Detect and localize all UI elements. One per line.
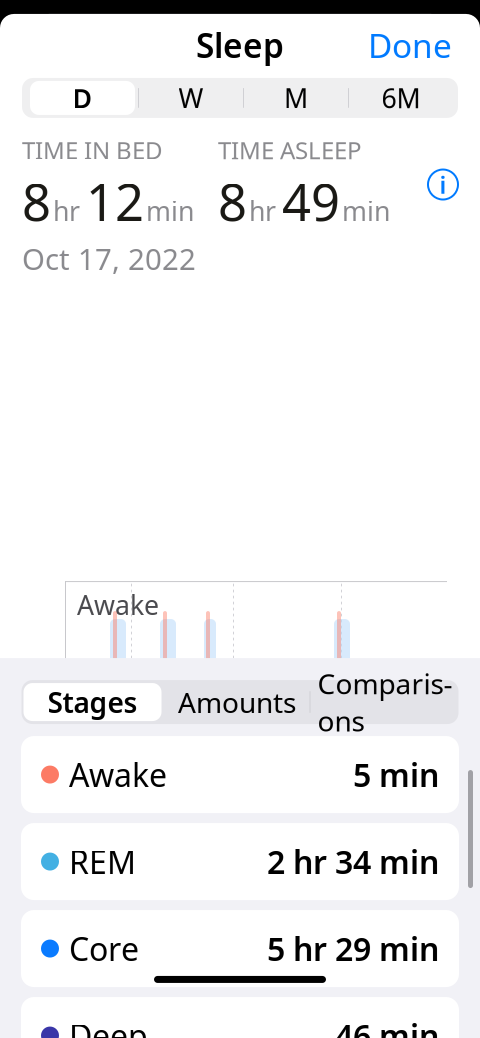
staticText: 6M bbox=[381, 80, 420, 116]
staticText: Sleep bbox=[196, 23, 284, 67]
staticText: 5 min bbox=[353, 753, 439, 796]
staticText: 5 hr 29 min bbox=[267, 927, 439, 970]
button[interactable]: REM bbox=[21, 823, 459, 900]
staticText: 8 PM bbox=[68, 926, 127, 960]
button[interactable]: Comparisons bbox=[310, 680, 459, 724]
button[interactable]: Amounts bbox=[164, 680, 309, 724]
staticText: min bbox=[146, 193, 194, 228]
staticText: Done bbox=[368, 23, 452, 67]
staticText: Amounts bbox=[178, 683, 296, 721]
button[interactable]: Deep bbox=[21, 997, 459, 1038]
button[interactable]: 6M bbox=[349, 78, 453, 118]
staticText: Comparisons bbox=[317, 665, 452, 739]
staticText: Core bbox=[69, 927, 139, 970]
staticText: 11 PM bbox=[135, 926, 208, 960]
button[interactable]: Core bbox=[21, 910, 459, 987]
staticText: TIME IN BED bbox=[22, 134, 163, 166]
staticText: 5 AM bbox=[345, 926, 405, 960]
button[interactable]: Awake bbox=[21, 736, 459, 813]
staticText: 2 AM bbox=[237, 926, 297, 960]
staticText: Awake bbox=[77, 587, 159, 622]
staticText: Oct 17, 2022 bbox=[22, 239, 196, 278]
staticText: i bbox=[439, 169, 446, 200]
staticText: Deep bbox=[77, 841, 142, 876]
staticText: hr bbox=[53, 193, 80, 228]
staticText: REM bbox=[69, 840, 136, 883]
staticText: 2 hr 34 min bbox=[267, 840, 439, 883]
staticText: TIME ASLEEP bbox=[218, 134, 362, 166]
staticText: 46 min bbox=[335, 1014, 439, 1038]
staticText: D bbox=[72, 80, 92, 116]
staticText: min bbox=[342, 193, 390, 228]
staticText: 12 bbox=[86, 168, 144, 235]
staticText: Deep bbox=[69, 1014, 148, 1038]
staticText: hr bbox=[249, 193, 276, 228]
staticText: REM bbox=[77, 672, 133, 707]
staticText: Awake bbox=[69, 753, 167, 796]
staticText: M bbox=[284, 80, 308, 116]
button[interactable]: M bbox=[244, 78, 348, 118]
button[interactable]: W bbox=[139, 78, 243, 118]
staticText: 8 bbox=[22, 168, 51, 235]
button[interactable]: Done bbox=[362, 15, 458, 75]
button[interactable]: D bbox=[27, 78, 138, 118]
staticText: W bbox=[178, 80, 203, 116]
staticText: Core bbox=[77, 756, 135, 791]
button[interactable]: Stages bbox=[20, 680, 164, 724]
button[interactable]: About sleep stages bbox=[428, 169, 458, 199]
staticText: 49 bbox=[282, 168, 340, 235]
staticText: 8 bbox=[218, 168, 247, 235]
staticText: Stages bbox=[47, 683, 137, 721]
